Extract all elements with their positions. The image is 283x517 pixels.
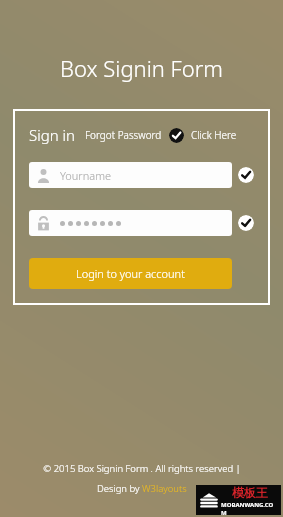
staticText: © 2015 Box Signin Form . All rights rese… (43, 462, 241, 475)
staticText: Box Signin Form (60, 53, 223, 83)
staticText: Design by (97, 482, 142, 495)
button[interactable]: Remember me (169, 128, 184, 143)
staticText: Sign in (29, 125, 75, 145)
staticText: MOBANWANG.COM (221, 501, 278, 515)
button[interactable]: Click Here (191, 128, 237, 142)
button[interactable]: W3layouts (142, 482, 187, 495)
staticText: Login to your account (76, 266, 185, 281)
staticText: 模板王 (232, 485, 268, 500)
button[interactable]: Valid (238, 167, 254, 183)
staticText: Yourname (60, 168, 112, 183)
button[interactable]: Login to your account (29, 258, 232, 289)
button[interactable]: Forgot Password (85, 128, 162, 142)
staticText: W3layouts (142, 482, 187, 495)
staticText: Forgot Password (85, 128, 162, 142)
staticText: Click Here (191, 128, 237, 142)
button[interactable]: Valid (238, 215, 254, 231)
button[interactable] (29, 210, 232, 236)
button[interactable]: Yourname (29, 162, 232, 188)
